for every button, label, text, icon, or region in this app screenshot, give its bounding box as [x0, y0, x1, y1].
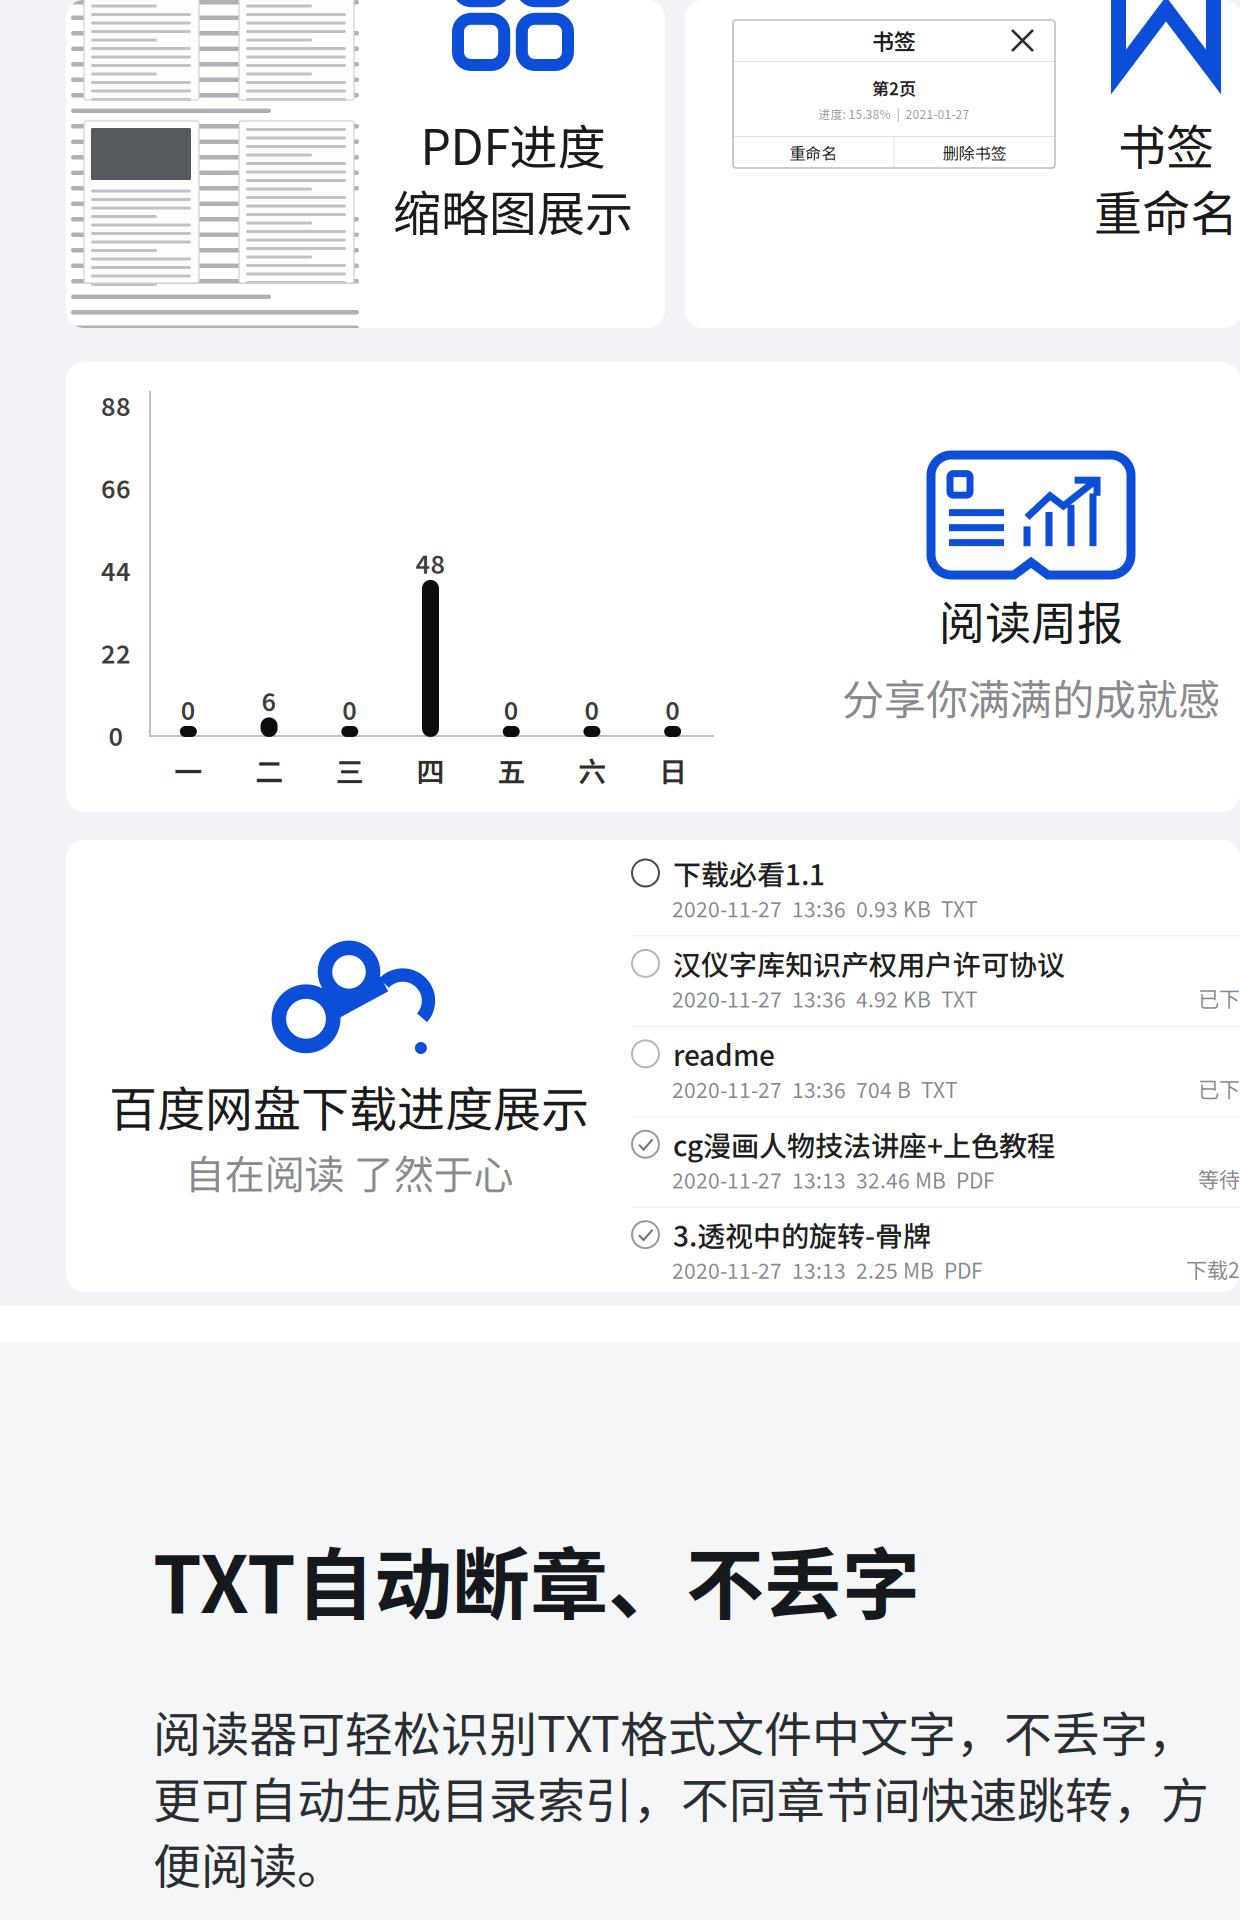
staticText: 2020-11-27 13:36 4.92 KB TXT	[672, 983, 978, 1014]
staticText: 0	[665, 691, 680, 727]
staticText: 44	[101, 552, 131, 588]
staticText: 阅读器可轻松识别TXT格式文件中文字，不丢字，	[153, 1696, 1196, 1766]
staticText: 汉仪字库知识产权用户许可协议	[673, 943, 1065, 984]
staticText: 百度网盘下载进度展示	[109, 1071, 589, 1141]
staticText: 0	[342, 691, 357, 727]
staticText: 删除书签	[943, 141, 1007, 164]
staticText: 分享你满满的成就感	[842, 667, 1220, 727]
staticText: 阅读周报	[939, 587, 1123, 653]
staticText: 三	[336, 750, 364, 790]
staticText: cg漫画人物技法讲座+上色教程	[673, 1124, 1055, 1164]
staticText: 22	[101, 634, 131, 671]
staticText: 六	[578, 750, 606, 790]
staticText: 2020-11-27 13:36 704 B TXT	[672, 1074, 958, 1104]
staticText: 3.透视中的旋转-骨牌	[673, 1214, 931, 1255]
staticText: 重命名	[1094, 175, 1238, 245]
staticText: 书签	[872, 25, 916, 56]
staticText: 0	[108, 717, 123, 753]
staticText: 日	[659, 750, 687, 790]
staticText: readme	[673, 1033, 775, 1074]
staticText: 四	[416, 750, 444, 790]
staticText: 6	[262, 682, 277, 718]
staticText: 66	[101, 469, 131, 506]
staticText: 已下	[1198, 1073, 1240, 1103]
staticText: 已下	[1198, 982, 1240, 1013]
staticText: 2020-11-27 13:13 32.46 MB PDF	[672, 1164, 995, 1194]
staticText: 自在阅读 了然于心	[184, 1143, 513, 1201]
staticText: 更可自动生成目录索引，不同章节间快速跳转，方	[153, 1762, 1209, 1832]
staticText: 2020-11-27 13:13 2.25 MB PDF	[672, 1254, 983, 1285]
staticText: 重命名	[789, 141, 837, 164]
staticText: PDF进度	[420, 109, 605, 179]
staticText: 0	[181, 691, 196, 727]
staticText: 下载2	[1186, 1254, 1240, 1284]
staticText: 五	[497, 750, 525, 790]
staticText: 0	[504, 691, 519, 727]
staticText: 书签	[1118, 109, 1214, 179]
staticText: TXT自动断章、不丢字	[153, 1522, 920, 1635]
staticText: 一	[174, 750, 202, 790]
staticText: 下载必看1.1	[673, 853, 825, 893]
staticText: 2020-11-27 13:36 0.93 KB TXT	[672, 893, 978, 923]
staticText: 二	[255, 750, 283, 790]
staticText: 88	[101, 387, 131, 423]
staticText: 等待	[1198, 1163, 1240, 1194]
staticText: 0	[584, 691, 599, 727]
staticText: 便阅读。	[153, 1828, 345, 1898]
staticText: 进度: 15.38% | 2021-01-27	[818, 105, 969, 122]
staticText: 第2页	[872, 75, 916, 100]
staticText: 缩略图展示	[393, 175, 633, 245]
staticText: 48	[415, 545, 445, 581]
